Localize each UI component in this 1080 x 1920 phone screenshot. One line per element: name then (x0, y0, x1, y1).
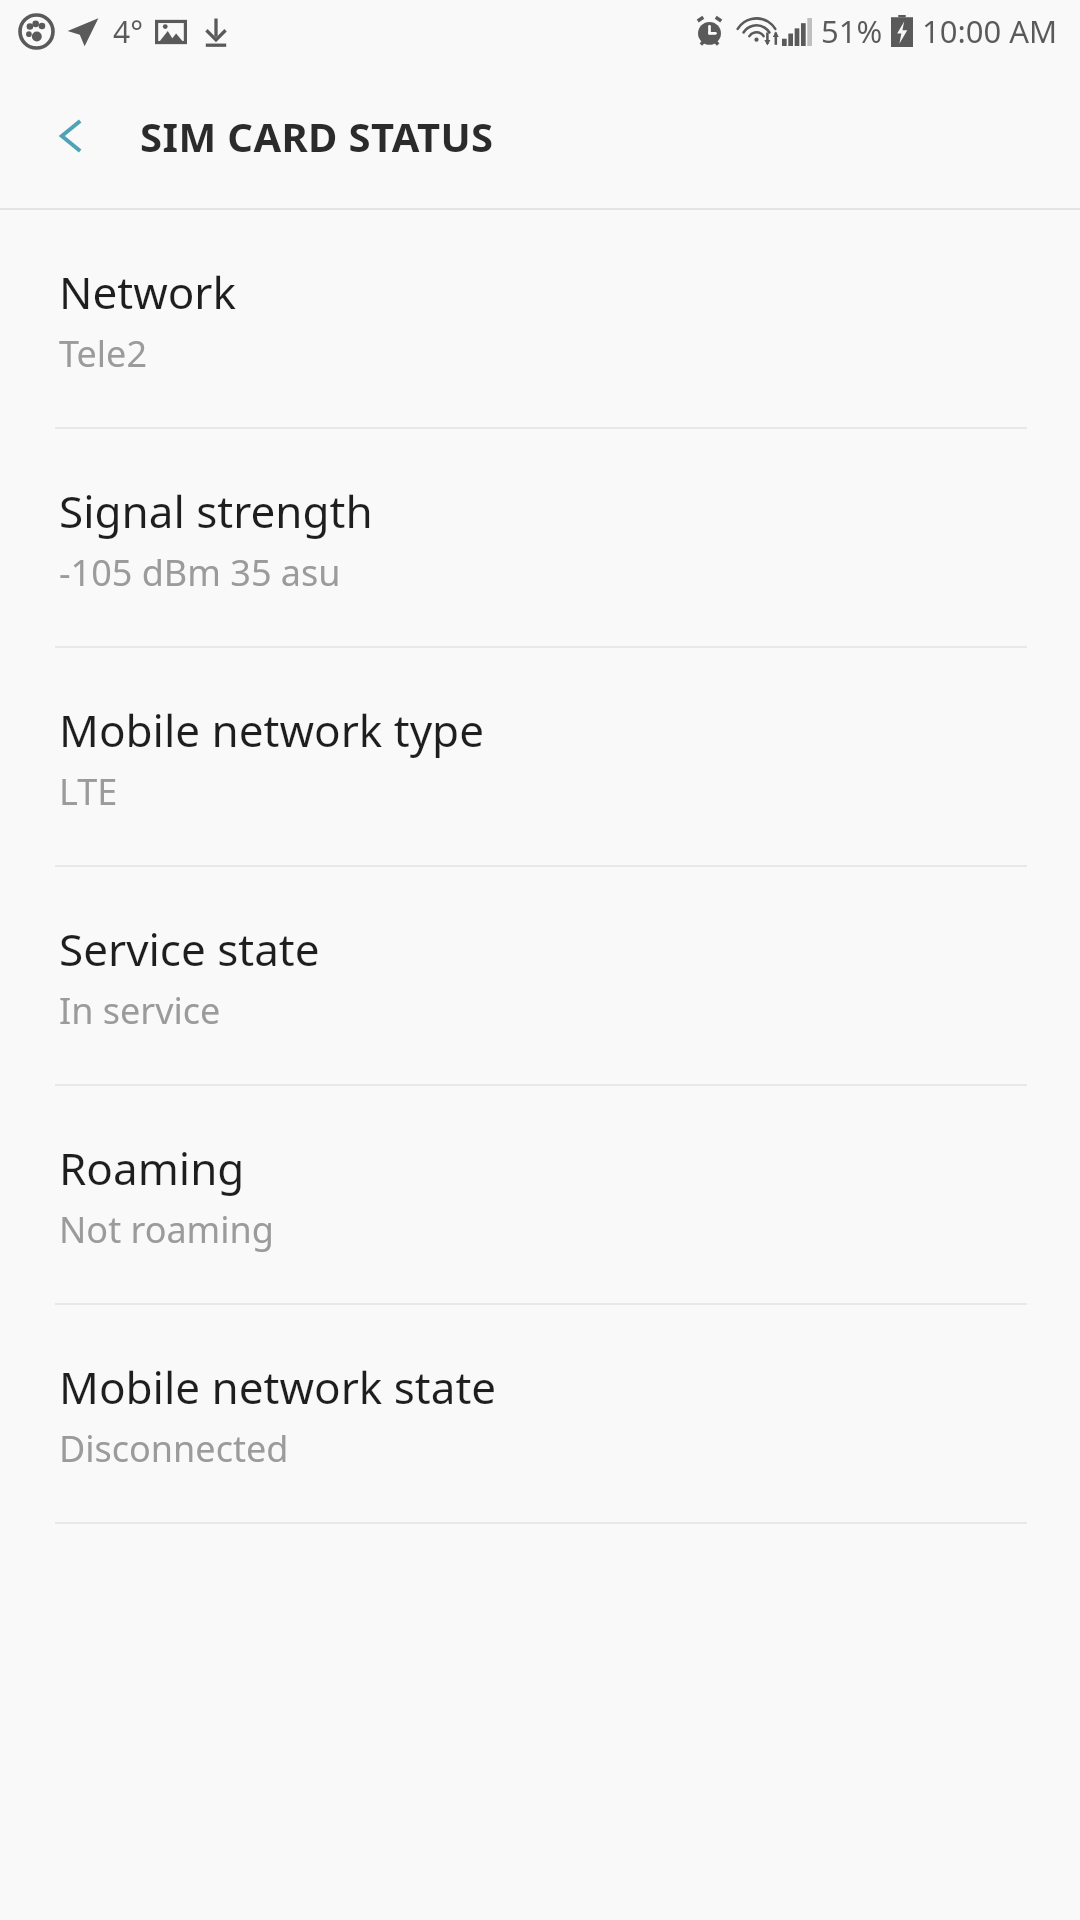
staticText: 4° (113, 11, 143, 52)
button[interactable]: Navigate up (28, 92, 116, 180)
staticText: Not roaming (59, 1205, 274, 1254)
staticText: Mobile network type (59, 700, 484, 760)
button[interactable]: Mobile network state (0, 1305, 1080, 1524)
staticText: SIM CARD STATUS (140, 109, 494, 163)
staticText: In service (59, 986, 221, 1035)
staticText: Service state (59, 919, 320, 979)
staticText: Mobile network state (59, 1357, 497, 1417)
staticText: 10:00 AM (922, 10, 1058, 52)
button[interactable]: Signal strength (0, 429, 1080, 648)
staticText: Disconnected (59, 1424, 289, 1473)
staticText: 51% (821, 10, 883, 52)
button[interactable]: Roaming (0, 1086, 1080, 1305)
staticText: Signal strength (59, 481, 373, 541)
staticText: LTE (59, 767, 118, 816)
staticText: Network (59, 262, 237, 322)
staticText: -105 dBm 35 asu (59, 548, 341, 597)
button[interactable]: Mobile network type (0, 648, 1080, 867)
button[interactable]: Service state (0, 867, 1080, 1086)
button[interactable]: Network (0, 210, 1080, 429)
staticText: Tele2 (59, 329, 147, 378)
staticText: Roaming (59, 1138, 245, 1198)
